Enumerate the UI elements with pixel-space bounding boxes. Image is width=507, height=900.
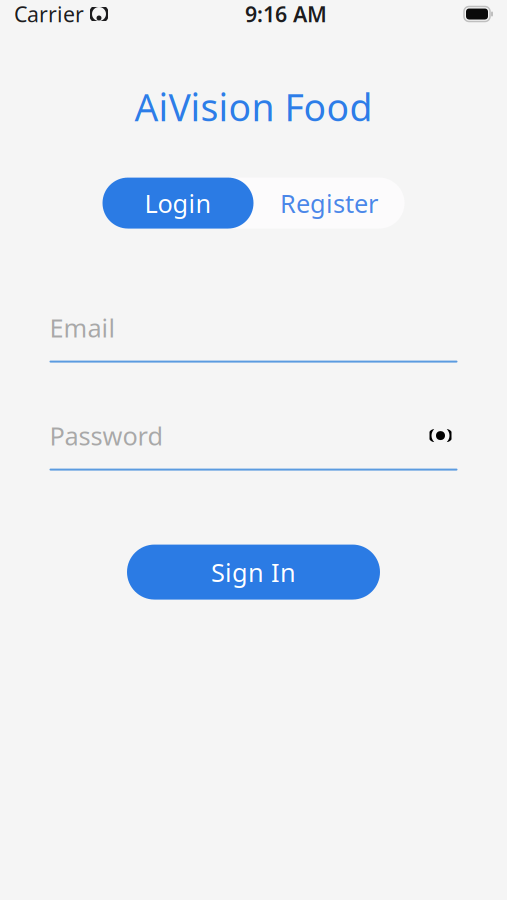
button[interactable]: Show password bbox=[423, 421, 457, 451]
staticText: Login bbox=[144, 186, 211, 220]
staticText: Register bbox=[280, 186, 378, 220]
staticText: 9:16 AM bbox=[245, 0, 327, 28]
staticText: Password bbox=[49, 419, 163, 452]
staticText: AiVision Food bbox=[134, 82, 372, 132]
staticText: Carrier bbox=[14, 0, 84, 28]
staticText: Sign In bbox=[211, 555, 296, 589]
staticText: Email bbox=[49, 311, 115, 344]
button[interactable]: Register bbox=[253, 178, 404, 229]
button[interactable]: Sign In bbox=[127, 545, 380, 600]
button[interactable]: Login bbox=[102, 178, 253, 229]
